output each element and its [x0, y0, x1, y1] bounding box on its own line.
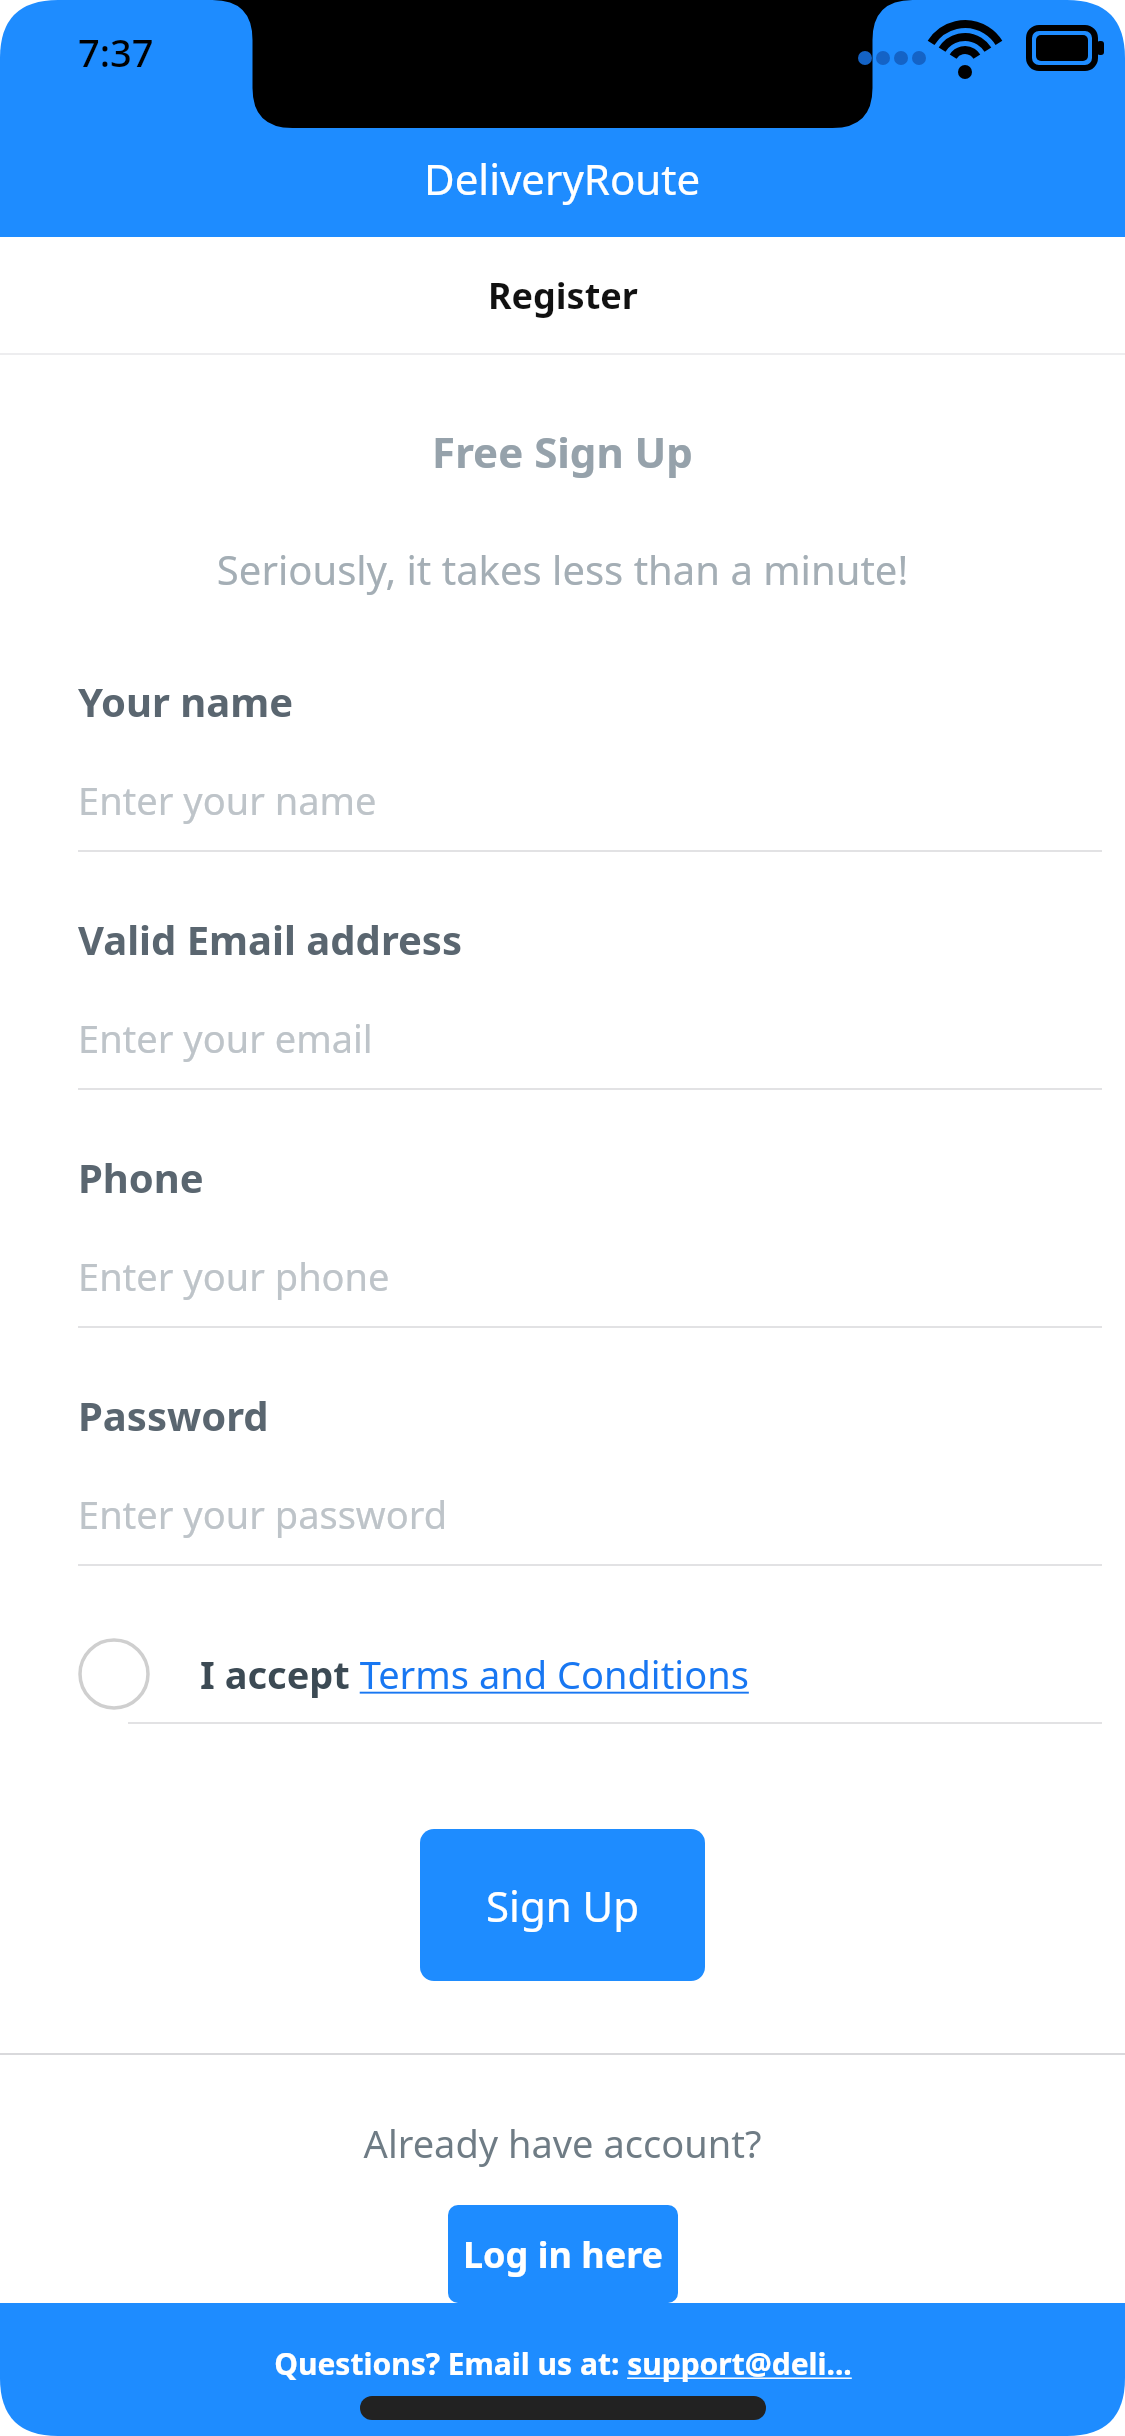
staticText: Your name	[78, 674, 294, 728]
button[interactable]: Valid Email address	[0, 912, 1125, 1150]
staticText: Enter your email	[78, 1012, 373, 1064]
staticText: DeliveryRoute	[424, 150, 701, 207]
button[interactable]: Sign Up	[420, 1829, 705, 1981]
button[interactable]: I accept Terms and Conditions	[78, 1626, 1102, 1722]
button[interactable]: Password	[0, 1388, 1125, 1626]
staticText: Sign Up	[486, 1877, 640, 1934]
staticText: Valid Email address	[78, 912, 462, 966]
staticText: Already have account?	[0, 2117, 1125, 2169]
button[interactable]: Your name	[0, 674, 1125, 912]
staticText: Register	[488, 271, 638, 320]
staticText: Enter your name	[78, 774, 377, 826]
staticText: Free Sign Up	[0, 423, 1125, 480]
staticText: Phone	[78, 1150, 204, 1204]
staticText: I accept Terms and Conditions	[200, 1648, 749, 1700]
staticText: Enter your password	[78, 1488, 448, 1540]
staticText: Seriously, it takes less than a minute!	[0, 542, 1125, 596]
staticText: Password	[78, 1388, 269, 1442]
staticText: 7:37	[78, 26, 154, 78]
button[interactable]: Phone	[0, 1150, 1125, 1388]
button[interactable]: Log in here	[448, 2205, 678, 2303]
staticText: Enter your phone	[78, 1250, 390, 1302]
button[interactable]: Questions? Email us at: support@deli...	[274, 2343, 852, 2384]
staticText: Log in here	[463, 2230, 664, 2279]
